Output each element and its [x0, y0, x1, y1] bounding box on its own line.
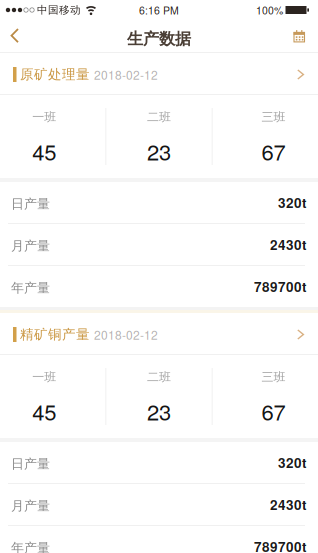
staticText: 二班	[147, 109, 171, 124]
staticText: 6:16 PM	[139, 2, 179, 17]
staticText: 2430t	[270, 235, 306, 254]
staticText: 45	[32, 135, 56, 167]
button[interactable]: Back	[0, 26, 30, 46]
staticText: 三班	[262, 369, 286, 384]
staticText: 年产量	[11, 540, 50, 553]
staticText: 320t	[278, 193, 306, 212]
button[interactable]: 原矿处理量	[0, 53, 318, 94]
staticText: 一班	[32, 109, 56, 124]
staticText: 月产量	[11, 238, 50, 254]
button[interactable]: 精矿铜产量	[0, 313, 318, 354]
staticText: 23	[147, 135, 171, 167]
staticText: 中国移动	[37, 3, 81, 17]
staticText: 789700t	[254, 537, 306, 553]
staticText: 23	[147, 395, 171, 427]
staticText: 三班	[262, 109, 286, 124]
staticText: 67	[262, 395, 286, 427]
staticText: 原矿处理量	[20, 66, 90, 83]
staticText: 日产量	[11, 456, 50, 472]
staticText: 年产量	[11, 280, 50, 296]
staticText: 精矿铜产量	[20, 326, 90, 343]
staticText: 2018-02-12	[94, 326, 158, 343]
staticText: 789700t	[254, 277, 306, 296]
staticText: 2430t	[270, 495, 306, 514]
staticText: 2018-02-12	[94, 66, 158, 83]
staticText: 月产量	[11, 498, 50, 514]
staticText: 320t	[278, 453, 306, 472]
staticText: 100%	[256, 2, 283, 17]
staticText: 一班	[32, 369, 56, 384]
staticText: 日产量	[11, 196, 50, 212]
staticText: 生产数据	[127, 29, 191, 49]
button[interactable]: Choose date	[292, 29, 318, 43]
staticText: 二班	[147, 369, 171, 384]
staticText: 67	[262, 135, 286, 167]
staticText: 45	[32, 395, 56, 427]
